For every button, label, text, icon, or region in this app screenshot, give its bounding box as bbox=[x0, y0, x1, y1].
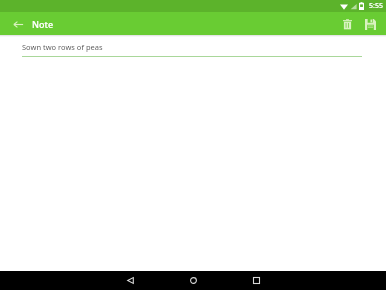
button[interactable]: Back bbox=[120, 271, 140, 290]
staticText: 5:55 bbox=[369, 1, 383, 11]
staticText: Sown two rows of peas bbox=[22, 42, 103, 52]
button[interactable]: Sown two rows of peas bbox=[22, 42, 362, 57]
staticText: Note bbox=[32, 18, 54, 30]
button[interactable]: Home bbox=[183, 271, 203, 290]
button[interactable]: Save bbox=[360, 14, 380, 34]
button[interactable]: Delete bbox=[337, 14, 357, 34]
button[interactable]: Recents bbox=[246, 271, 266, 290]
button[interactable]: Back bbox=[10, 16, 26, 32]
